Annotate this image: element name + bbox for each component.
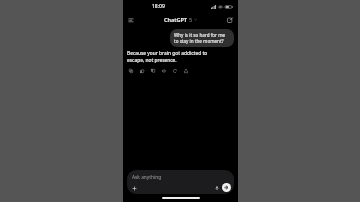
button[interactable]: Voice mode [222, 183, 231, 192]
button[interactable]: Copy [127, 67, 134, 74]
button[interactable]: Open sidebar [126, 15, 136, 25]
button[interactable]: Read aloud [160, 67, 167, 74]
button[interactable]: Bad response [149, 67, 156, 74]
button[interactable]: Regenerate [171, 67, 178, 74]
button[interactable]: ChatGPT [162, 15, 199, 24]
staticText: 5 [189, 16, 193, 23]
staticText: 18:09 [152, 3, 165, 10]
button[interactable]: Add attachment [130, 184, 138, 192]
staticText: Why is it so hard for me to stay in the … [174, 32, 230, 44]
button[interactable]: New chat [225, 15, 235, 25]
staticText: Because your brain got addicted to escap… [127, 50, 225, 64]
staticText: ChatGPT [164, 16, 187, 23]
staticText: Ask anything [132, 174, 162, 181]
button[interactable]: Why is it so hard for me to stay in the … [170, 29, 234, 47]
button[interactable]: Ask anything [127, 170, 234, 194]
button[interactable]: Share [182, 67, 189, 74]
button[interactable]: Dictate [213, 184, 220, 191]
button[interactable]: Good response [138, 67, 145, 74]
